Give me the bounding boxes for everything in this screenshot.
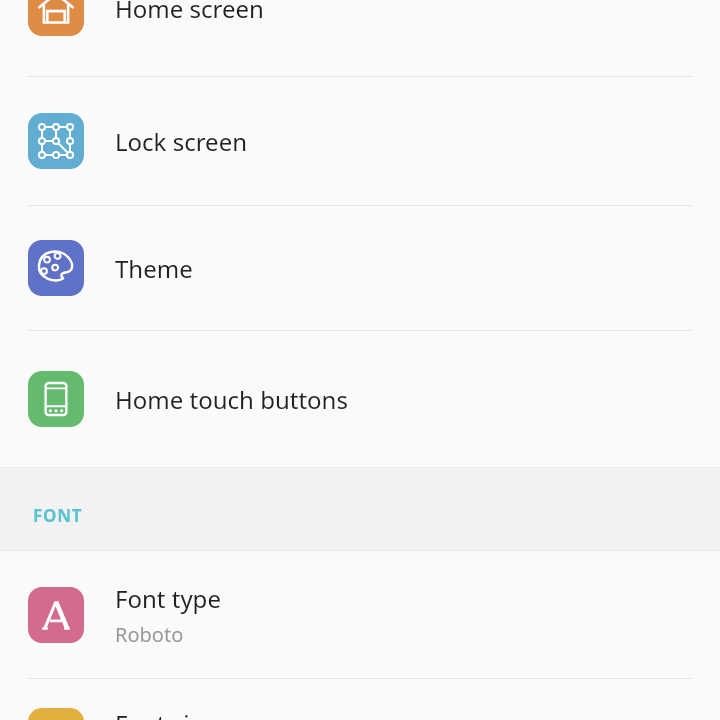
staticText: Font size [115,707,215,720]
button[interactable]: Lock screen [0,77,720,205]
staticText: Lock screen [115,125,248,158]
button[interactable]: Theme [0,206,720,330]
button[interactable]: Home touch buttons [0,331,720,467]
button[interactable]: Font type [0,551,720,678]
staticText: Roboto [115,621,184,648]
staticText: FONT [33,504,83,527]
staticText: Home touch buttons [115,383,348,416]
staticText: Home screen [115,0,264,25]
staticText: Font type [115,582,221,615]
staticText: Theme [115,252,193,285]
button[interactable]: Home screen [0,0,720,76]
button[interactable]: Font size [0,679,720,720]
